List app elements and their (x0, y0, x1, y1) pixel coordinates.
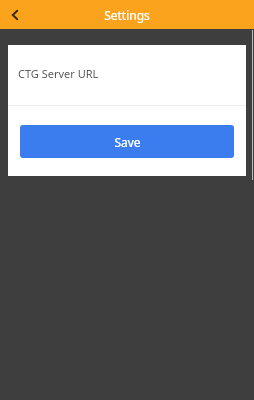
staticText: CTG Server URL (18, 66, 99, 81)
button[interactable]: CTG Server URL (8, 45, 246, 105)
button[interactable]: Back (2, 2, 28, 28)
staticText: Save (114, 134, 141, 150)
button[interactable]: Save (20, 125, 234, 158)
staticText: Settings (104, 7, 150, 23)
